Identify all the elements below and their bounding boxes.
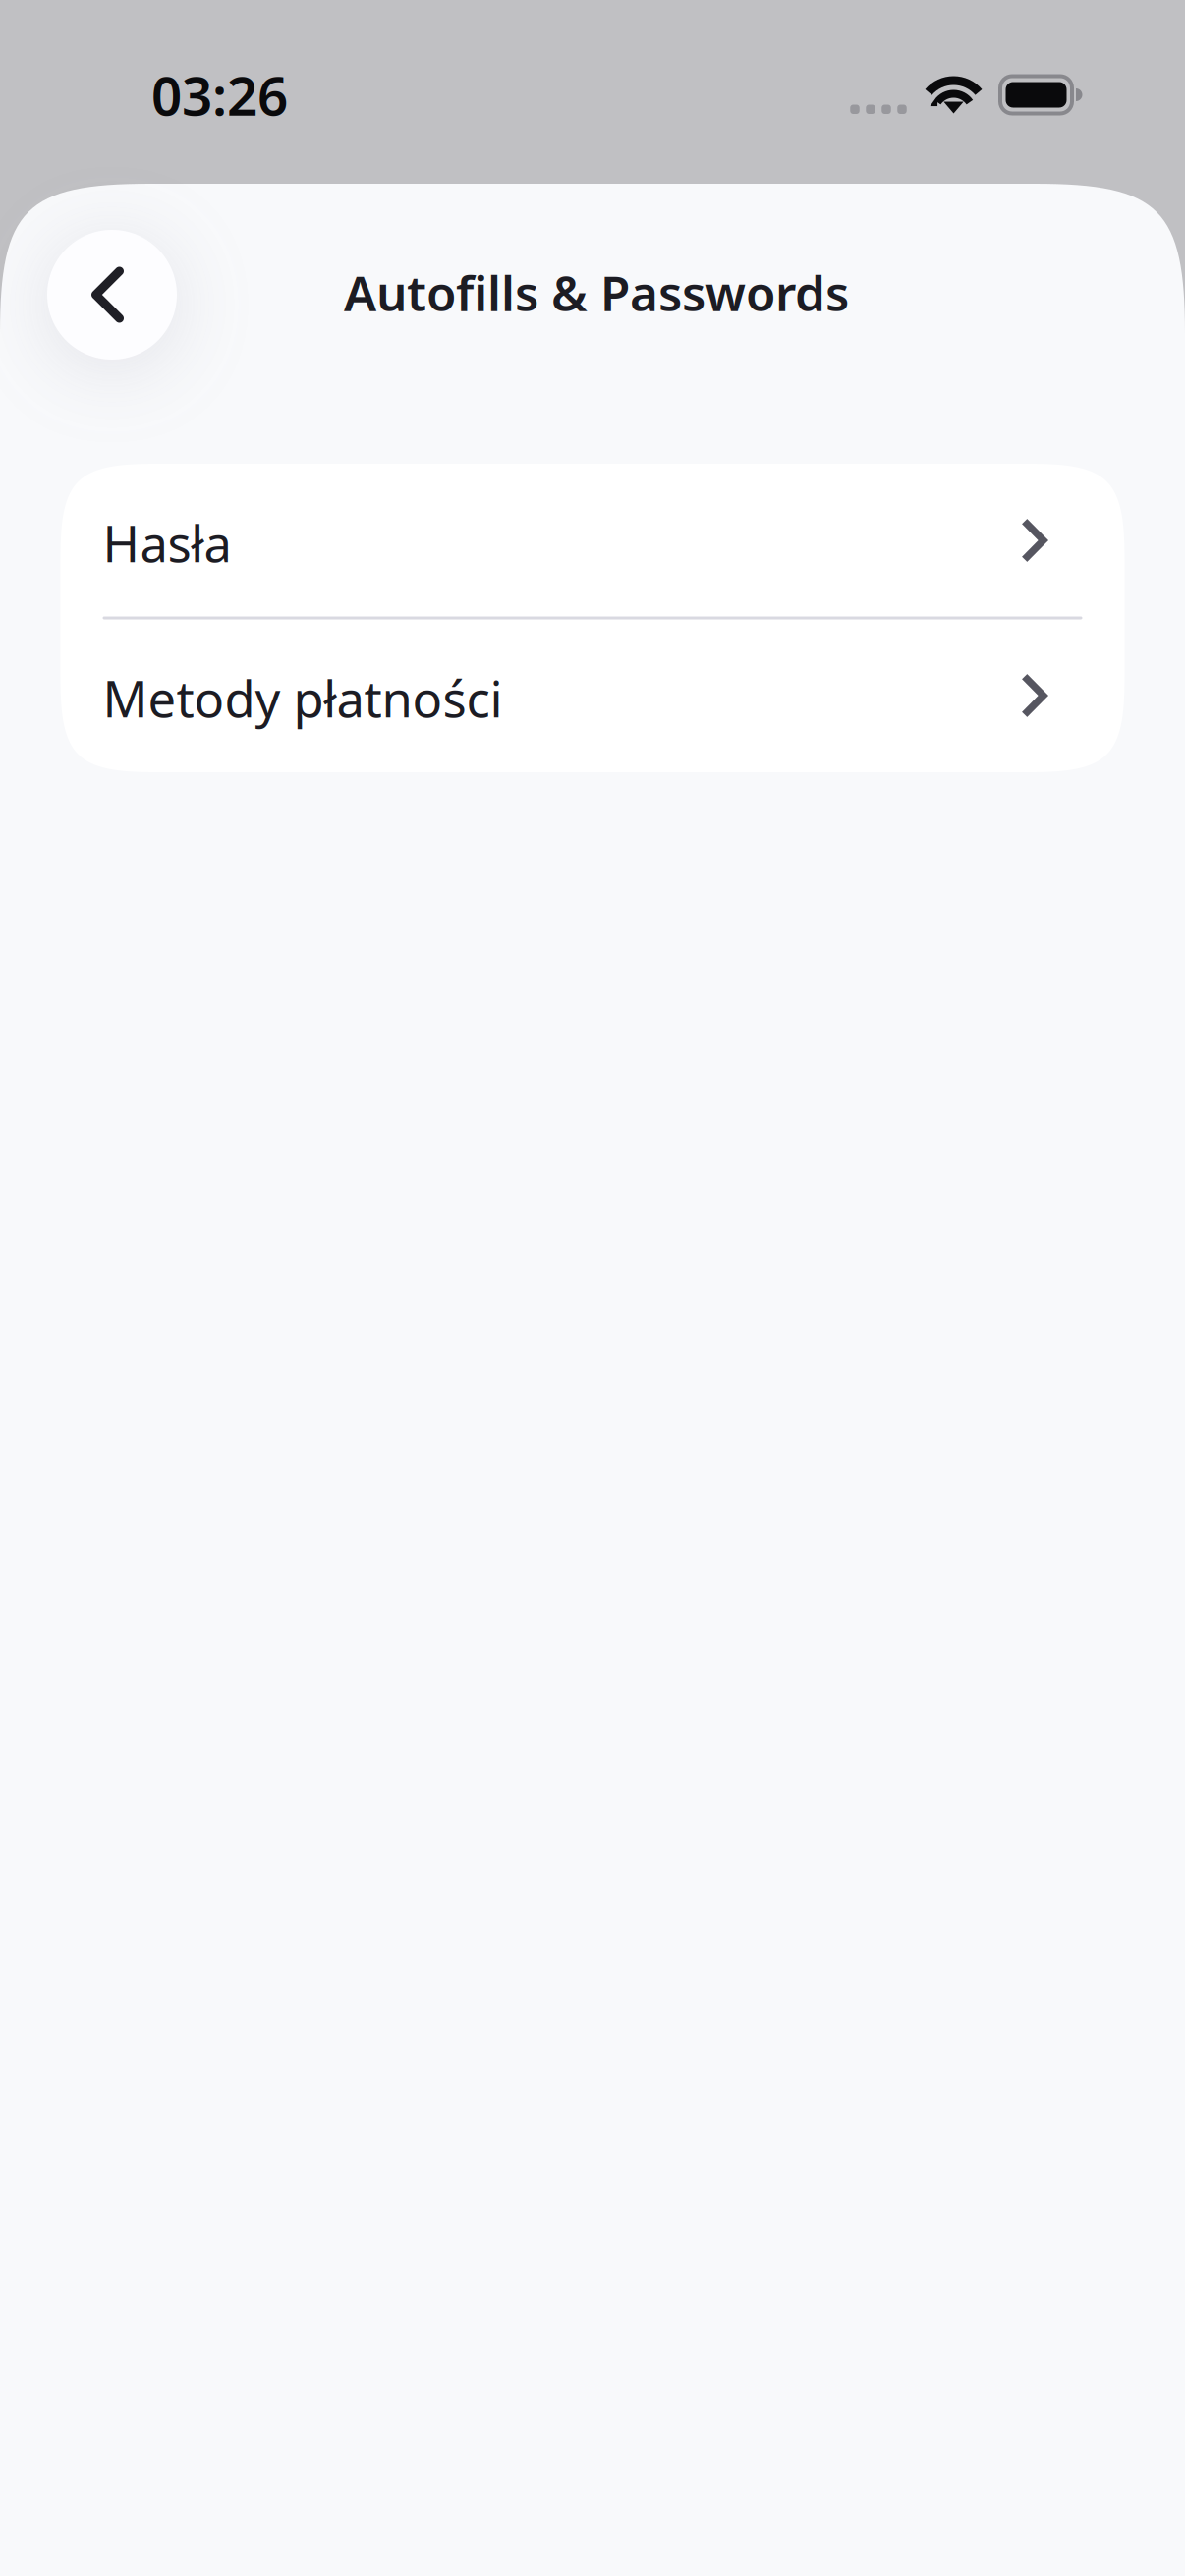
button[interactable]: Metody płatności [60,619,1125,772]
staticText: Autofills & Passwords [344,260,849,324]
staticText: Hasła [103,510,231,576]
button[interactable]: Back [47,230,177,360]
button[interactable]: Hasła [60,464,1125,616]
staticText: Metody płatności [103,665,503,731]
staticText: 03:26 [151,59,288,130]
